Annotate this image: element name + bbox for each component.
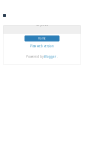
button[interactable]: View web version	[30, 44, 54, 48]
button[interactable]: Blogger	[44, 55, 56, 58]
staticText: Blogger	[44, 55, 56, 58]
staticText: Home	[38, 37, 46, 40]
staticText: View web version	[30, 44, 54, 48]
staticText: No posts.	[35, 23, 48, 27]
staticText: Powered by	[26, 55, 43, 58]
button[interactable]: Site logo	[3, 14, 6, 17]
staticText: .	[57, 55, 58, 58]
button[interactable]: Home	[24, 35, 59, 41]
